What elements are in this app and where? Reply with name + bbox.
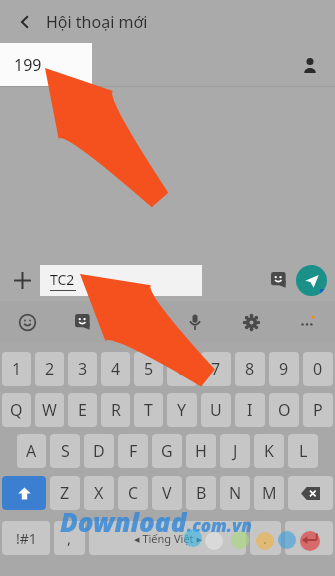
button[interactable]: D	[84, 434, 114, 468]
button[interactable]: O	[269, 393, 299, 427]
staticText: Y	[177, 399, 187, 421]
staticText: S	[61, 440, 70, 462]
staticText: O	[278, 399, 291, 421]
button[interactable]: more	[279, 301, 335, 343]
button[interactable]: Add attachment	[6, 264, 38, 296]
staticText: 3	[78, 358, 88, 380]
staticText: U	[210, 399, 222, 421]
staticText: .	[263, 528, 268, 548]
button[interactable]: Stickers	[264, 265, 294, 295]
button[interactable]: 199	[0, 43, 92, 87]
staticText: 6	[177, 358, 187, 380]
staticText: 199	[14, 54, 42, 76]
button[interactable]: V	[152, 476, 182, 510]
staticText: R	[111, 399, 121, 421]
button[interactable]: Z	[50, 476, 80, 510]
button[interactable]: 7	[201, 352, 231, 386]
button[interactable]: I	[235, 393, 265, 427]
button[interactable]: L	[288, 434, 318, 468]
staticText: D	[93, 440, 105, 462]
staticText: E	[78, 399, 87, 421]
staticText: F	[129, 440, 138, 462]
button[interactable]: X	[84, 476, 114, 510]
button[interactable]: TC2	[40, 265, 202, 296]
staticText: I	[247, 399, 253, 421]
staticText: T	[144, 399, 153, 421]
staticText: P	[313, 399, 323, 421]
staticText: 9	[279, 358, 289, 380]
staticText: A	[26, 440, 37, 462]
button[interactable]: 9	[269, 352, 299, 386]
staticText: H	[195, 440, 207, 462]
staticText: .com.vn	[187, 514, 252, 537]
staticText: B	[196, 482, 207, 504]
button[interactable]: Space, Tiếng Việt	[89, 521, 246, 555]
button[interactable]: W	[35, 393, 64, 427]
staticText: 1	[12, 358, 22, 380]
button[interactable]: Back	[8, 5, 42, 39]
button[interactable]: Backspace	[288, 476, 333, 510]
button[interactable]: 1	[2, 352, 31, 386]
button[interactable]: C	[118, 476, 148, 510]
button[interactable]: U	[201, 393, 231, 427]
button[interactable]: E	[68, 393, 97, 427]
button[interactable]: emoji	[0, 301, 55, 343]
staticText: 4	[111, 358, 121, 380]
button[interactable]: 6	[167, 352, 197, 386]
staticText: 7	[211, 358, 221, 380]
staticText: N	[229, 482, 242, 504]
button[interactable]: 4	[101, 352, 130, 386]
button[interactable]: A	[17, 434, 46, 468]
staticText: ◂ Tiếng Việt ▸	[134, 531, 202, 546]
button[interactable]: 2	[35, 352, 64, 386]
button[interactable]: G	[152, 434, 182, 468]
button[interactable]: P	[303, 393, 333, 427]
button[interactable]: ,	[54, 521, 85, 555]
staticText: M	[262, 482, 277, 504]
staticText: V	[162, 482, 172, 504]
staticText: 1	[323, 289, 327, 296]
button[interactable]: gif	[111, 301, 167, 343]
button[interactable]: 5	[134, 352, 163, 386]
staticText: X	[94, 482, 104, 504]
staticText: G	[161, 440, 173, 462]
button[interactable]: sticker	[55, 301, 111, 343]
button[interactable]: Enter	[285, 521, 333, 555]
button[interactable]: settings	[223, 301, 279, 343]
button[interactable]: 0	[303, 352, 333, 386]
button[interactable]: Choose contact	[293, 48, 327, 82]
button[interactable]: Send	[296, 265, 327, 296]
staticText: 2	[45, 358, 55, 380]
staticText: 5	[144, 358, 154, 380]
staticText: TC2	[50, 270, 75, 289]
button[interactable]: N	[220, 476, 250, 510]
button[interactable]: K	[254, 434, 284, 468]
button[interactable]: Q	[2, 393, 31, 427]
button[interactable]: J	[220, 434, 250, 468]
staticText: W	[42, 399, 57, 421]
staticText: Z	[60, 482, 70, 504]
button[interactable]: F	[118, 434, 148, 468]
button[interactable]: mic	[167, 301, 223, 343]
button[interactable]: !#1	[2, 521, 50, 555]
staticText: !#1	[16, 529, 37, 548]
staticText: J	[233, 440, 238, 462]
button[interactable]: .	[250, 521, 281, 555]
button[interactable]: Shift	[2, 476, 46, 510]
button[interactable]: Y	[167, 393, 197, 427]
staticText: Download	[60, 504, 187, 539]
button[interactable]: R	[101, 393, 130, 427]
button[interactable]: B	[186, 476, 216, 510]
button[interactable]: T	[134, 393, 163, 427]
button[interactable]: S	[50, 434, 80, 468]
staticText: K	[264, 440, 274, 462]
button[interactable]: H	[186, 434, 216, 468]
button[interactable]: M	[254, 476, 284, 510]
staticText: C	[128, 482, 139, 504]
staticText: L	[299, 440, 308, 462]
button[interactable]: 8	[235, 352, 265, 386]
staticText: ,	[67, 528, 72, 548]
button[interactable]: 3	[68, 352, 97, 386]
staticText: 0	[313, 358, 323, 380]
